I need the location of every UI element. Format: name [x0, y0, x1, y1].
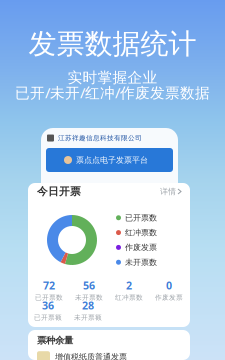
button[interactable]: 今日开票	[28, 183, 190, 200]
staticText: 未开票额	[74, 313, 102, 322]
staticText: 今日开票	[37, 185, 81, 198]
staticText: 未开票数	[75, 293, 103, 302]
staticText: 发票数据统计	[28, 27, 196, 61]
staticText: 实时掌握企业	[67, 68, 157, 86]
staticText: 红冲票数	[125, 228, 157, 237]
staticText: 28	[82, 298, 94, 312]
staticText: 作废发票	[155, 293, 183, 302]
staticText: 作废发票	[125, 242, 157, 252]
staticText: 56	[83, 278, 95, 292]
staticText: 已开票数	[35, 293, 63, 302]
staticText: 票点点电子发票平台	[76, 155, 148, 165]
staticText: 未开票数	[125, 257, 157, 267]
staticText: 已开票额	[34, 313, 62, 322]
staticText: 36	[42, 298, 54, 312]
staticText: 72	[43, 278, 55, 292]
staticText: 已开票数	[125, 213, 157, 223]
staticText: 增值税纸质普通发票	[55, 352, 127, 360]
staticText: 红冲票数	[115, 293, 143, 302]
staticText: 2	[126, 278, 132, 292]
staticText: 票种余量	[37, 335, 73, 346]
staticText: 详情	[160, 187, 176, 196]
staticText: 0	[166, 278, 172, 292]
staticText: 已开/未开/红冲/作废发票数据	[15, 83, 210, 102]
staticText: 江苏祥趣信息科技有限公司	[58, 134, 142, 142]
